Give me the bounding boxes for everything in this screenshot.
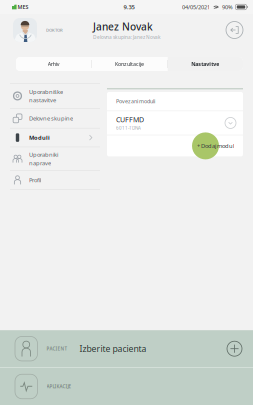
button[interactable]: Konzultacije: [92, 57, 167, 71]
staticText: DOKTOR: [46, 27, 63, 33]
button[interactable]: Uporabniki: [0, 147, 100, 170]
button[interactable]: APLIKACIJE: [0, 368, 253, 405]
staticText: Profil: [29, 176, 41, 184]
button[interactable]: Expand module: [225, 117, 236, 128]
staticText: Nastavitve: [191, 60, 219, 68]
staticText: Uporabniške: [29, 88, 63, 96]
staticText: Uporabniki: [29, 151, 58, 158]
staticText: nastavitve: [29, 96, 56, 104]
button[interactable]: Nastavitve: [168, 57, 243, 71]
button[interactable]: Delovne skupine: [0, 109, 100, 128]
button[interactable]: Uporabniške: [0, 84, 100, 108]
button[interactable]: Arhiv: [16, 57, 91, 71]
staticText: Povezani moduli: [116, 98, 155, 105]
staticText: Izberite pacienta: [79, 343, 146, 355]
staticText: MES: [17, 3, 28, 11]
button[interactable]: Profil: [0, 171, 100, 189]
staticText: CUFFMD: [116, 115, 144, 124]
staticText: Arhiv: [48, 60, 60, 68]
button[interactable]: PACIENT: [0, 330, 253, 367]
staticText: Delovna skupina: Janez Novak: [93, 34, 161, 40]
staticText: 90%: [222, 3, 233, 11]
button[interactable]: Sign out: [221, 16, 248, 43]
staticText: APLIKACIJE: [46, 383, 71, 390]
staticText: naprave: [29, 159, 51, 167]
staticText: Moduli: [29, 134, 50, 141]
staticText: + Dodaj modul: [197, 142, 234, 150]
staticText: 9.35: [123, 3, 134, 11]
staticText: Konzultacije: [115, 60, 144, 68]
staticText: 04/05/2021: [182, 3, 210, 11]
button[interactable]: Moduli: [0, 129, 100, 147]
button[interactable]: + Dodaj modul: [194, 139, 237, 153]
staticText: PACIENT: [46, 346, 67, 352]
staticText: 6011-TDNA: [116, 125, 141, 131]
staticText: Janez Novak: [93, 20, 153, 33]
staticText: Delovne skupine: [29, 114, 73, 122]
